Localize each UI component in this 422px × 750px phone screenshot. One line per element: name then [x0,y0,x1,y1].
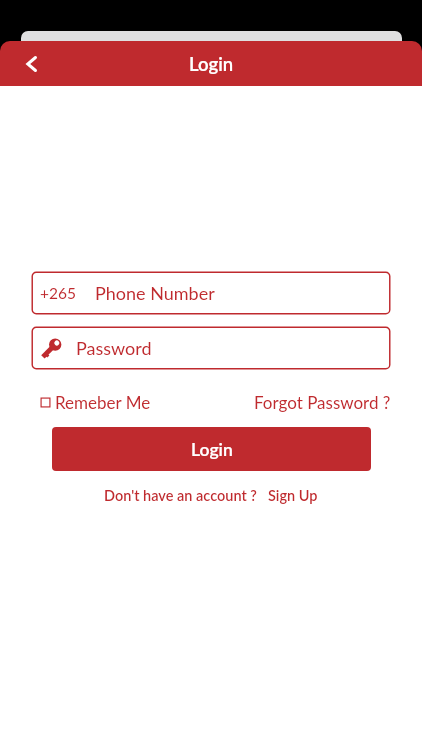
button[interactable]: Login [52,427,371,471]
button[interactable]: Forgot Password ? [254,392,391,412]
staticText: Login [189,53,234,75]
button[interactable]: Sign Up [268,487,318,504]
staticText: Remeber Me [55,392,151,412]
staticText: Phone Number [95,282,215,304]
button[interactable]: +265 [31,271,391,315]
staticText: Password [76,337,152,359]
button[interactable]: Remeber Me [40,392,151,412]
staticText: +265 [40,284,76,303]
button[interactable]: Password [31,326,391,370]
button[interactable]: Back [10,42,54,86]
staticText: Login [191,439,233,460]
staticText: Don't have an account ? [104,487,257,504]
